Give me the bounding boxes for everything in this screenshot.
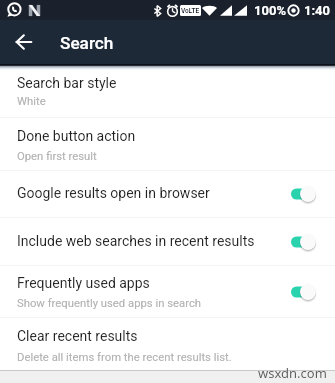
staticText: 100% bbox=[254, 3, 286, 18]
staticText: Search bbox=[60, 33, 114, 53]
staticText: Include web searches in recent results bbox=[17, 233, 255, 249]
button[interactable]: Google results open in browser bbox=[0, 171, 335, 217]
staticText: White bbox=[17, 95, 46, 108]
button[interactable]: Done button action bbox=[0, 118, 335, 170]
button[interactable]: Include web searches in recent results bbox=[0, 218, 335, 265]
button[interactable]: Back bbox=[0, 20, 46, 64]
staticText: 1:40 bbox=[304, 3, 331, 18]
staticText: Search bar style bbox=[17, 75, 117, 91]
staticText: Delete all items from the recent results… bbox=[17, 351, 232, 364]
staticText: Clear recent results bbox=[17, 328, 138, 344]
staticText: VoLTE bbox=[181, 7, 200, 15]
staticText: Google results open in browser bbox=[17, 185, 210, 201]
staticText: wsxdn.com bbox=[258, 364, 327, 382]
staticText: Done button action bbox=[17, 128, 136, 144]
staticText: Frequently used apps bbox=[17, 275, 150, 291]
staticText: Open first result bbox=[17, 150, 97, 163]
button[interactable]: Clear recent results bbox=[0, 318, 335, 378]
button[interactable]: Search bar style bbox=[0, 64, 335, 117]
button[interactable]: Frequently used apps bbox=[0, 266, 335, 317]
staticText: Show frequently used apps in search bbox=[17, 297, 202, 310]
